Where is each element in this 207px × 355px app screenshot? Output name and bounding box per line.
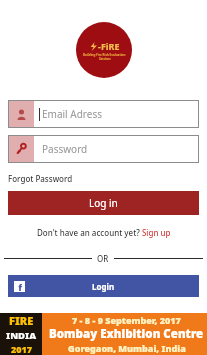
staticText: Database [99,57,111,60]
staticText: Goregaon, Mumbai, India [68,342,186,354]
staticText: f [18,281,22,292]
staticText: Password [42,142,88,156]
staticText: INDIA [6,329,37,342]
button[interactable]: f [8,275,199,297]
staticText: Log in [89,196,118,210]
staticText: Email Adress [42,107,102,121]
button[interactable]: FIRE [0,313,207,355]
staticText: 2017 [11,343,33,355]
button[interactable]: Password field [8,135,199,163]
staticText: FIRE [9,313,34,328]
staticText: OR [97,253,109,264]
staticText: Forgot Password [8,173,73,184]
staticText: Bombay Exhibition Centre [49,326,204,342]
staticText: Login [92,281,115,292]
button[interactable]: Log in [8,191,199,215]
button[interactable]: Don't have an account yet? Sign up [35,226,173,239]
staticText: 7 - 8 - 9 September, 2017 [72,314,181,326]
button[interactable]: Email address field [8,100,199,128]
button[interactable]: Forgot Password [8,172,73,185]
staticText: Don't have an account yet? Sign up [37,227,171,238]
staticText: Building Fire Risk Evaluation [83,53,126,57]
staticText: -FiRE [98,40,120,52]
